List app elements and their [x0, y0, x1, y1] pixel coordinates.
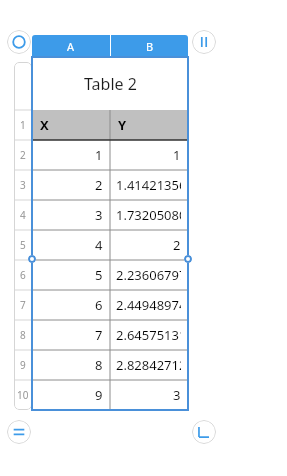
button[interactable]: Y	[118, 110, 188, 140]
button[interactable]: 9	[32, 380, 103, 410]
button[interactable]: 1	[116, 140, 181, 170]
button[interactable]: 2.82842712	[116, 350, 181, 380]
button[interactable]: A	[32, 35, 110, 57]
button[interactable]: B	[111, 35, 188, 57]
staticText: 2	[20, 148, 26, 162]
staticText: 1	[173, 146, 181, 164]
button[interactable]: 3	[116, 380, 181, 410]
button[interactable]: Table 2	[32, 57, 188, 110]
button[interactable]: 2.44948974	[116, 290, 181, 320]
button[interactable]: Select object	[7, 30, 31, 54]
staticText: 4	[20, 208, 26, 222]
staticText: 3	[20, 178, 26, 192]
button[interactable]: 7	[32, 320, 103, 350]
button[interactable]: 2	[32, 170, 103, 200]
button[interactable]: 6	[14, 260, 32, 290]
staticText: 6	[95, 296, 103, 314]
button[interactable]: 3	[14, 170, 32, 200]
button[interactable]: 6	[32, 290, 103, 320]
staticText: 8	[20, 328, 26, 342]
staticText: 2	[95, 176, 103, 194]
button[interactable]: 5	[14, 230, 32, 260]
button[interactable]: 9	[14, 350, 32, 380]
staticText: X	[40, 116, 49, 134]
button[interactable]: 2.64575131	[116, 320, 181, 350]
button[interactable]: 10	[14, 380, 32, 410]
button[interactable]: 2.23606797	[116, 260, 181, 290]
button[interactable]: 5	[32, 260, 103, 290]
staticText: 1.41421356	[116, 176, 181, 194]
staticText: 9	[20, 358, 26, 372]
button[interactable]: 1.41421356	[116, 170, 181, 200]
button[interactable]: 1	[32, 140, 103, 170]
button[interactable]: 8	[14, 320, 32, 350]
button[interactable]: Corner	[192, 420, 216, 444]
staticText: 1.73205080	[116, 206, 181, 224]
button[interactable]: 7	[14, 290, 32, 320]
staticText: 1	[95, 146, 103, 164]
button[interactable]: 4	[32, 230, 103, 260]
button[interactable]: X	[40, 110, 110, 140]
staticText: 7	[20, 298, 26, 312]
staticText: 10	[17, 388, 29, 402]
button[interactable]: 2	[14, 140, 32, 170]
staticText: Table 2	[84, 73, 137, 95]
button[interactable]: 1	[14, 110, 32, 140]
staticText: 2.64575131	[116, 326, 181, 344]
staticText: 2.23606797	[116, 266, 181, 284]
staticText: 4	[95, 236, 103, 254]
button[interactable]: 3	[32, 200, 103, 230]
staticText: B	[146, 39, 154, 54]
staticText: 5	[95, 266, 103, 284]
button[interactable]: Pause	[192, 30, 216, 54]
staticText: 2.82842712	[116, 356, 181, 374]
button[interactable]: 1.73205080	[116, 200, 181, 230]
staticText: Y	[118, 116, 127, 134]
button[interactable]: 8	[32, 350, 103, 380]
staticText: 6	[20, 268, 26, 282]
staticText: 1	[20, 118, 26, 132]
button[interactable]: 4	[14, 200, 32, 230]
staticText: 9	[95, 386, 103, 404]
staticText: 3	[173, 386, 181, 404]
button[interactable]: Equals	[7, 420, 31, 444]
staticText: 5	[20, 238, 26, 252]
staticText: 7	[95, 326, 103, 344]
staticText: 8	[95, 356, 103, 374]
button[interactable]: 2	[116, 230, 181, 260]
staticText: 2	[173, 236, 181, 254]
staticText: A	[67, 39, 75, 54]
staticText: 3	[95, 206, 103, 224]
staticText: 2.44948974	[116, 296, 181, 314]
